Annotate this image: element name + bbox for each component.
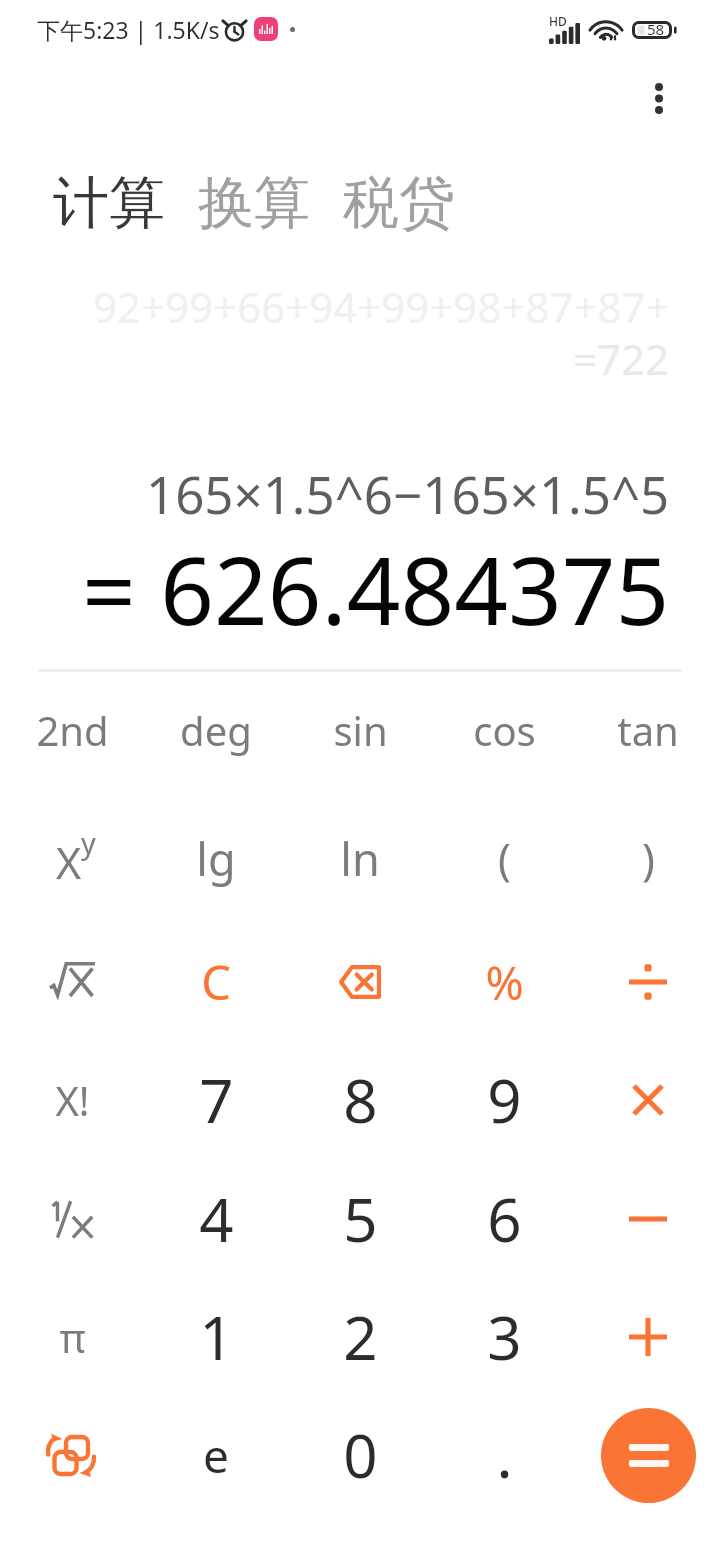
button[interactable]: cos [432, 672, 576, 788]
button[interactable]: % [432, 924, 576, 1040]
button[interactable]: ln [288, 800, 432, 916]
button[interactable]: tan [576, 672, 720, 788]
button[interactable]: e [144, 1397, 288, 1513]
button[interactable]: 3 [432, 1279, 576, 1395]
button[interactable]: Minus [576, 1161, 720, 1277]
button[interactable]: ( [432, 800, 576, 916]
staticText: 8 [343, 1059, 378, 1141]
staticText: 58 [647, 19, 665, 39]
staticText: cos [473, 703, 536, 757]
staticText: tan [617, 703, 679, 757]
button[interactable]: Multiply [576, 1042, 720, 1158]
button[interactable]: 2 [288, 1279, 432, 1395]
staticText: 计算 [53, 168, 165, 239]
button[interactable]: Plus [576, 1279, 720, 1395]
staticText: 7 [199, 1059, 234, 1141]
button[interactable]: lg [144, 800, 288, 916]
staticText: 6 [487, 1178, 522, 1260]
button[interactable]: 税贷 [343, 168, 455, 239]
button[interactable]: More options [626, 65, 692, 131]
staticText: lg [196, 828, 236, 889]
button[interactable]: 7 [144, 1042, 288, 1158]
staticText: ln [340, 828, 380, 889]
staticText: 0 [343, 1414, 378, 1496]
staticText: HD [549, 13, 567, 29]
button[interactable]: 5 [288, 1161, 432, 1277]
button[interactable]: 9 [432, 1042, 576, 1158]
button[interactable]: C [144, 924, 288, 1040]
button[interactable]: Divide [576, 924, 720, 1040]
staticText: 下午5:23 | 1.5K/s [37, 14, 220, 45]
staticText: = 626.484375 [82, 525, 670, 653]
button[interactable]: 1 [144, 1279, 288, 1395]
button[interactable]: 6 [432, 1161, 576, 1277]
staticText: 4 [199, 1178, 234, 1260]
button[interactable]: Convert [0, 1397, 144, 1513]
staticText: π [59, 1310, 86, 1364]
staticText: e [203, 1424, 229, 1487]
button[interactable]: π [0, 1279, 144, 1395]
staticText: X! [55, 1073, 90, 1127]
button[interactable]: 8 [288, 1042, 432, 1158]
staticText: =722 [573, 330, 670, 387]
staticText: 换算 [198, 168, 310, 239]
staticText: 2 [343, 1296, 378, 1378]
staticText: 税贷 [343, 168, 455, 239]
button[interactable]: 计算 [53, 168, 165, 239]
button[interactable]: 0 [288, 1397, 432, 1513]
button[interactable]: sin [288, 672, 432, 788]
button[interactable]: 换算 [198, 168, 310, 239]
staticText: C [201, 950, 231, 1014]
staticText: 92+99+66+94+99+98+87+87+ [93, 278, 670, 335]
staticText: deg [180, 703, 252, 757]
staticText: X [56, 833, 82, 892]
staticText: ( [498, 829, 511, 888]
button[interactable]: 2nd [0, 672, 144, 788]
staticText: ) [642, 829, 655, 888]
staticText: 9 [487, 1059, 522, 1141]
staticText: % [485, 951, 524, 1014]
staticText: . [496, 1414, 513, 1496]
staticText: sin [333, 703, 388, 757]
button[interactable]: deg [144, 672, 288, 788]
button[interactable]: Backspace [288, 924, 432, 1040]
button[interactable]: . [432, 1397, 576, 1513]
staticText: 1 [199, 1296, 234, 1378]
staticText: 5 [343, 1178, 378, 1260]
staticText: 3 [487, 1296, 522, 1378]
staticText: y [81, 823, 96, 862]
button[interactable]: Square root [0, 924, 144, 1040]
button[interactable]: 4 [144, 1161, 288, 1277]
button[interactable]: X! [0, 1042, 144, 1158]
button[interactable]: one over x [0, 1161, 144, 1277]
staticText: 2nd [36, 703, 109, 757]
button[interactable]: Equals [601, 1408, 696, 1503]
button[interactable]: ) [576, 800, 720, 916]
staticText: 165×1.5^6−165×1.5^5 [146, 459, 670, 528]
button[interactable]: x to the power y [0, 800, 144, 916]
